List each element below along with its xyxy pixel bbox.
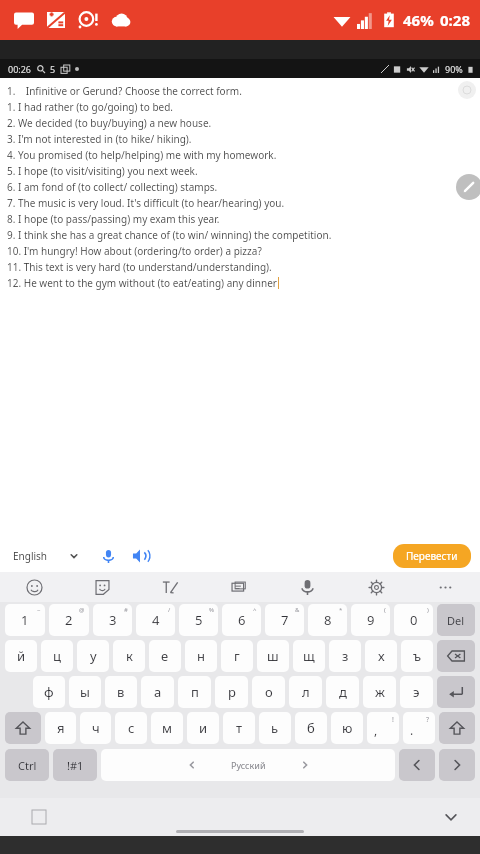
button[interactable]: Перевести bbox=[393, 544, 471, 568]
button[interactable]: Keyboard bbox=[32, 810, 46, 824]
staticText: ю bbox=[342, 719, 353, 737]
button[interactable]: ь bbox=[259, 712, 291, 744]
button[interactable]: е bbox=[149, 640, 181, 672]
button[interactable]: Hide keyboard bbox=[440, 806, 462, 828]
button[interactable]: Next bbox=[439, 749, 475, 781]
button[interactable]: ф bbox=[33, 676, 65, 708]
staticText: р bbox=[228, 683, 236, 701]
button[interactable]: п bbox=[178, 676, 211, 708]
button[interactable]: , bbox=[367, 712, 399, 744]
button[interactable]: Shift bbox=[439, 712, 475, 744]
staticText: 0 bbox=[410, 611, 418, 629]
staticText: 12. He went to the gym without (to eat/e… bbox=[7, 276, 277, 290]
staticText: 90% bbox=[445, 63, 463, 75]
button[interactable]: 3 bbox=[93, 604, 132, 636]
button[interactable]: к bbox=[113, 640, 145, 672]
button[interactable] bbox=[437, 676, 475, 708]
button[interactable]: Settings bbox=[342, 572, 411, 602]
button[interactable]: в bbox=[105, 676, 137, 708]
button[interactable]: Close bbox=[458, 81, 476, 99]
button[interactable]: л bbox=[289, 676, 322, 708]
button[interactable]: о bbox=[252, 676, 285, 708]
button[interactable]: Speak bbox=[127, 543, 153, 569]
button[interactable]: я bbox=[45, 712, 76, 744]
button[interactable]: Handwriting bbox=[136, 572, 204, 602]
staticText: 1. Infinitive or Gerund? Choose the corr… bbox=[7, 84, 242, 98]
staticText: д bbox=[339, 683, 347, 701]
button[interactable]: 2 bbox=[49, 604, 89, 636]
button[interactable]: и bbox=[187, 712, 219, 744]
button[interactable]: г bbox=[221, 640, 253, 672]
staticText: Ctrl bbox=[18, 758, 37, 773]
button[interactable]: Clipboard bbox=[204, 572, 273, 602]
staticText: з bbox=[342, 647, 349, 665]
staticText: ) bbox=[427, 606, 429, 614]
staticText: л bbox=[302, 683, 310, 701]
staticText: Del bbox=[447, 613, 465, 628]
button[interactable]: Edit bbox=[456, 174, 480, 200]
staticText: 7 bbox=[281, 611, 289, 629]
button[interactable]: щ bbox=[293, 640, 325, 672]
staticText: г bbox=[234, 647, 240, 665]
button[interactable]: More bbox=[411, 572, 480, 602]
staticText: й bbox=[17, 647, 26, 665]
button[interactable]: Del bbox=[437, 604, 475, 636]
staticText: ц bbox=[53, 647, 61, 665]
button[interactable]: Previous bbox=[399, 749, 435, 781]
button[interactable]: н bbox=[185, 640, 217, 672]
staticText: ы bbox=[80, 683, 90, 701]
staticText: & bbox=[295, 606, 300, 614]
button[interactable]: ж bbox=[363, 676, 396, 708]
staticText: 8. I hope (to pass/passing) my exam this… bbox=[7, 212, 220, 226]
button[interactable]: 8 bbox=[308, 604, 347, 636]
staticText: к bbox=[126, 647, 133, 665]
button[interactable]: р bbox=[215, 676, 248, 708]
staticText: 10. I'm hungry! How about (ordering/to o… bbox=[7, 244, 262, 258]
button[interactable]: 4 bbox=[136, 604, 175, 636]
button[interactable]: у bbox=[77, 640, 109, 672]
button[interactable]: English bbox=[10, 546, 81, 566]
button[interactable]: 9 bbox=[351, 604, 390, 636]
button[interactable]: ю bbox=[331, 712, 363, 744]
button[interactable] bbox=[437, 640, 475, 672]
button[interactable]: Stickers bbox=[68, 572, 136, 602]
button[interactable]: 6 bbox=[222, 604, 261, 636]
staticText: 0:28 bbox=[440, 10, 470, 30]
button[interactable]: ъ bbox=[401, 640, 433, 672]
button[interactable]: й bbox=[5, 640, 37, 672]
staticText: !#1 bbox=[67, 758, 84, 773]
button[interactable]: д bbox=[326, 676, 359, 708]
button[interactable]: б bbox=[295, 712, 327, 744]
button[interactable]: э bbox=[400, 676, 433, 708]
button[interactable]: !#1 bbox=[53, 749, 97, 781]
button[interactable]: 1 bbox=[5, 604, 45, 636]
button[interactable]: а bbox=[141, 676, 174, 708]
button[interactable]: ц bbox=[41, 640, 73, 672]
button[interactable]: Shift bbox=[5, 712, 41, 744]
button[interactable]: з bbox=[329, 640, 361, 672]
staticText: , bbox=[374, 722, 378, 738]
button[interactable]: Voice input bbox=[95, 543, 121, 569]
button[interactable]: Voice bbox=[273, 572, 342, 602]
button[interactable]: Ctrl bbox=[5, 749, 49, 781]
staticText: щ bbox=[303, 647, 315, 665]
button[interactable]: Emoji bbox=[0, 572, 68, 602]
staticText: 4. You promised (to help/helping) me wit… bbox=[7, 148, 277, 162]
button[interactable]: м bbox=[151, 712, 183, 744]
button[interactable]: т bbox=[223, 712, 255, 744]
staticText: 2 bbox=[65, 611, 73, 629]
button[interactable]: Space bbox=[101, 749, 395, 781]
button[interactable]: ч bbox=[80, 712, 111, 744]
button[interactable]: с bbox=[115, 712, 147, 744]
staticText: Русский bbox=[231, 759, 266, 771]
button[interactable]: 0 bbox=[394, 604, 433, 636]
button[interactable]: ш bbox=[257, 640, 289, 672]
staticText: о bbox=[265, 683, 273, 701]
staticText: @ bbox=[79, 606, 85, 614]
button[interactable]: 7 bbox=[265, 604, 304, 636]
button[interactable]: 5 bbox=[179, 604, 218, 636]
button[interactable]: . bbox=[403, 712, 435, 744]
button[interactable]: х bbox=[365, 640, 397, 672]
button[interactable]: ы bbox=[69, 676, 101, 708]
staticText: 5 bbox=[195, 611, 203, 629]
